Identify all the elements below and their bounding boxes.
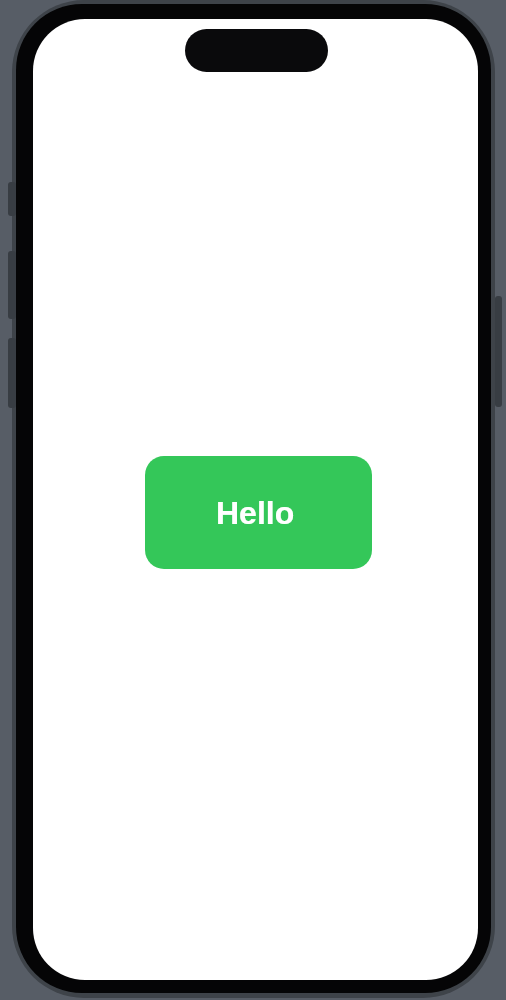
button[interactable]: Hello — [145, 456, 372, 569]
staticText: Hello — [216, 495, 295, 531]
